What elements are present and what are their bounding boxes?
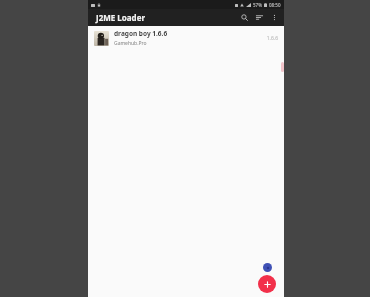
button[interactable]: Add from storage [263, 263, 272, 272]
staticText: Gamehub.Pro [114, 40, 147, 47]
staticText: 08:50 [269, 2, 281, 8]
button[interactable]: Add app [258, 275, 276, 293]
staticText: dragon boy 1.6.6 [114, 29, 168, 38]
button[interactable]: Search [237, 10, 252, 25]
button[interactable]: Sort [252, 10, 267, 25]
staticText: J2ME Loader [96, 12, 145, 23]
staticText: 1.6.6 [266, 35, 278, 42]
staticText: 57% [253, 2, 262, 8]
button[interactable]: More options [267, 10, 282, 25]
button[interactable]: dragon boy 1.6.6 [88, 26, 284, 50]
